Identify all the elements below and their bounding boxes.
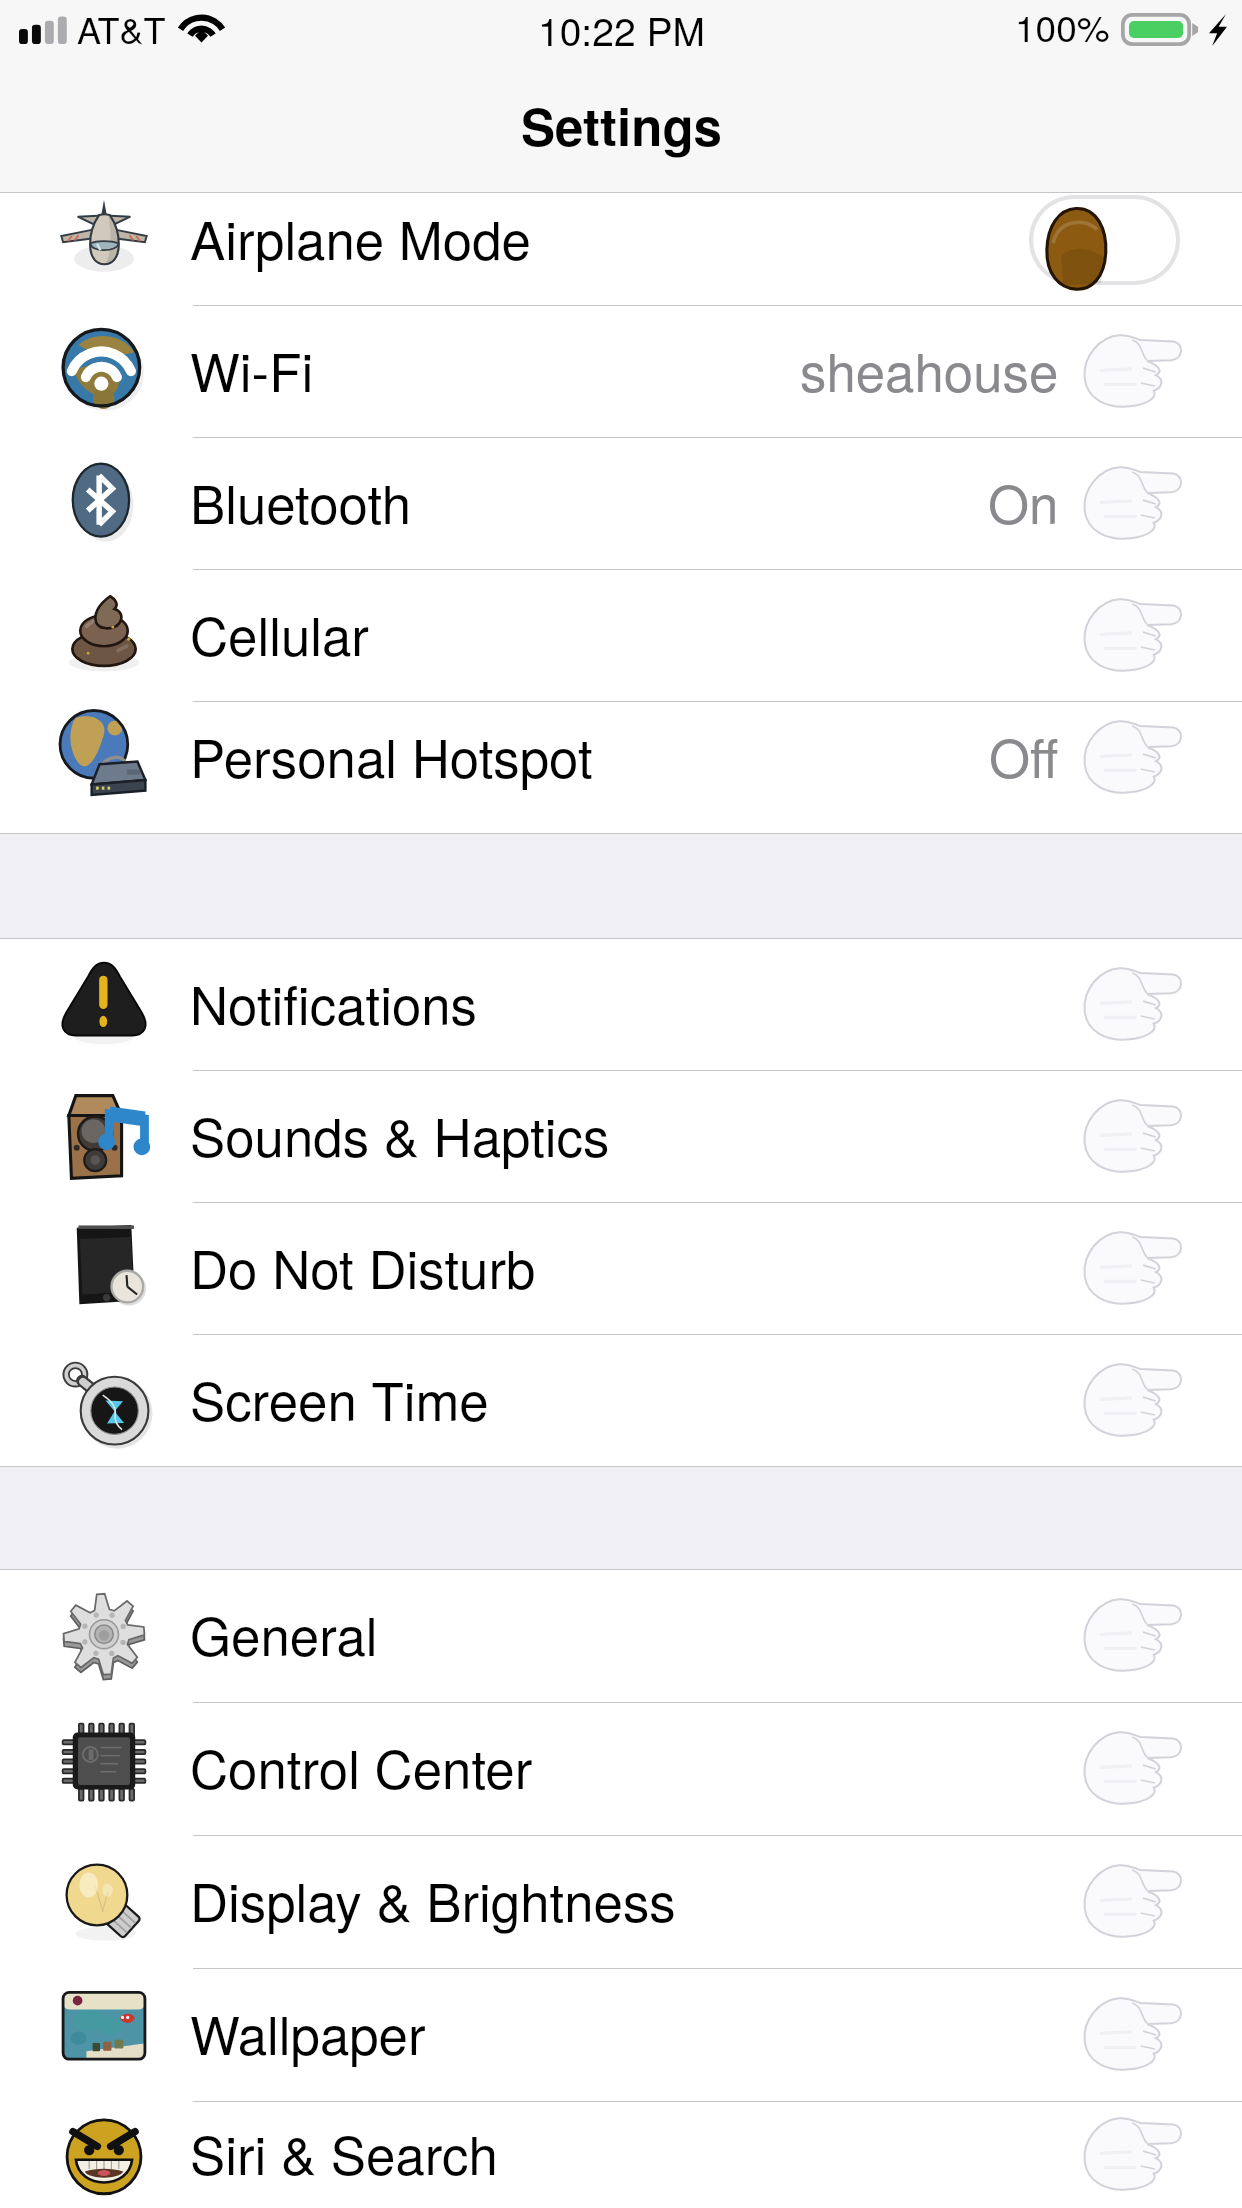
staticText: Do Not Disturb bbox=[190, 1228, 536, 1304]
staticText: General bbox=[190, 1595, 378, 1671]
staticText: Cellular bbox=[190, 595, 369, 671]
staticText: Notifications bbox=[190, 964, 478, 1040]
button[interactable]: Screen Time bbox=[0, 1335, 1242, 1466]
staticText: sheahouse bbox=[800, 331, 1059, 407]
staticText: Bluetooth bbox=[190, 463, 412, 539]
other: Open Do Not Disturb bbox=[1076, 1230, 1184, 1308]
button[interactable]: Wallpaper bbox=[0, 1969, 1242, 2101]
button[interactable]: General bbox=[0, 1570, 1242, 1702]
other: Open Wallpaper bbox=[1076, 1996, 1184, 2074]
other: Open Wi-Fi bbox=[1076, 333, 1184, 411]
button[interactable]: Siri & Search bbox=[0, 2102, 1242, 2208]
staticText: AT&T bbox=[77, 3, 166, 55]
other: Open General bbox=[1076, 1597, 1184, 1675]
other: Open Personal Hotspot bbox=[1076, 719, 1184, 797]
other: Open Screen Time bbox=[1076, 1362, 1184, 1440]
button[interactable]: Display & Brightness bbox=[0, 1836, 1242, 1968]
other: Airplane Mode off bbox=[1029, 195, 1180, 285]
staticText: Settings bbox=[521, 89, 722, 162]
other: Open Display & Brightness bbox=[1076, 1863, 1184, 1941]
button[interactable]: Control Center bbox=[0, 1703, 1242, 1835]
button[interactable]: Notifications bbox=[0, 939, 1242, 1070]
staticText: Sounds & Haptics bbox=[190, 1096, 610, 1172]
button[interactable]: Cellular bbox=[0, 570, 1242, 701]
button[interactable]: Do Not Disturb bbox=[0, 1203, 1242, 1334]
other: Open Notifications bbox=[1076, 966, 1184, 1044]
staticText: On bbox=[988, 463, 1059, 539]
staticText: 10:22 PM bbox=[538, 1, 705, 57]
other: Open Cellular bbox=[1076, 597, 1184, 675]
staticText: Airplane Mode bbox=[190, 199, 531, 275]
staticText: Off bbox=[989, 717, 1059, 793]
other: Open Siri & Search bbox=[1076, 2116, 1184, 2194]
staticText: Screen Time bbox=[190, 1360, 489, 1436]
button[interactable]: Sounds & Haptics bbox=[0, 1071, 1242, 1202]
staticText: Display & Brightness bbox=[190, 1861, 676, 1937]
button[interactable]: Personal Hotspot bbox=[0, 702, 1242, 814]
button[interactable]: Airplane Mode bbox=[0, 193, 1242, 305]
staticText: Personal Hotspot bbox=[190, 717, 593, 793]
staticText: Wi-Fi bbox=[190, 331, 314, 407]
staticText: 100% bbox=[1015, 0, 1110, 53]
staticText: Control Center bbox=[190, 1728, 533, 1804]
staticText: Wallpaper bbox=[190, 1994, 426, 2070]
other: Open Sounds & Haptics bbox=[1076, 1098, 1184, 1176]
staticText: Siri & Search bbox=[190, 2114, 498, 2190]
other: Open Control Center bbox=[1076, 1730, 1184, 1808]
other: Open Bluetooth bbox=[1076, 465, 1184, 543]
button[interactable]: Bluetooth bbox=[0, 438, 1242, 569]
button[interactable]: Wi-Fi bbox=[0, 306, 1242, 437]
